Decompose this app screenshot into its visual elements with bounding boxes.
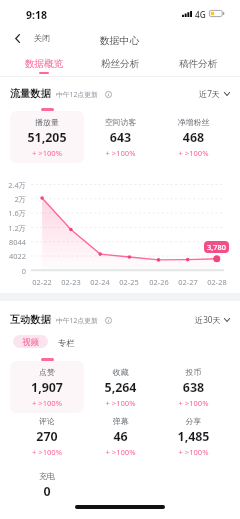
staticText: + >100% bbox=[10, 148, 84, 158]
button[interactable]: 数据概览 bbox=[12, 52, 76, 76]
button[interactable]: 专栏 bbox=[54, 334, 79, 348]
staticText: 互动数据 bbox=[10, 313, 51, 326]
staticText: 数据概览 bbox=[25, 58, 64, 70]
staticText: 468 bbox=[157, 129, 230, 146]
staticText: 0 bbox=[0, 266, 26, 276]
staticText: 4G bbox=[195, 9, 206, 20]
button[interactable] bbox=[10, 410, 84, 462]
staticText: 1.2万 bbox=[0, 223, 26, 233]
staticText: 02-22 bbox=[28, 277, 56, 287]
other: Info bbox=[105, 317, 112, 324]
staticText: 8044 bbox=[0, 237, 26, 247]
staticText: 02-24 bbox=[86, 277, 114, 287]
other: Info bbox=[105, 91, 112, 98]
staticText: 1,485 bbox=[157, 428, 230, 445]
button[interactable]: 近30天 bbox=[191, 313, 240, 326]
staticText: 2万 bbox=[0, 194, 26, 204]
staticText: 270 bbox=[10, 428, 84, 445]
staticText: 视频 bbox=[22, 337, 39, 348]
button[interactable]: Back bbox=[9, 29, 57, 47]
staticText: + >100% bbox=[84, 398, 157, 408]
staticText: 1.6万 bbox=[0, 208, 26, 218]
staticText: 净增粉丝 bbox=[157, 117, 230, 127]
staticText: 51,205 bbox=[10, 129, 84, 146]
staticText: 02-23 bbox=[57, 277, 85, 287]
button[interactable] bbox=[157, 111, 230, 163]
button[interactable]: 粉丝分析 bbox=[88, 52, 152, 76]
staticText: 2.4万 bbox=[0, 180, 26, 190]
button[interactable]: 稿件分析 bbox=[166, 52, 230, 76]
staticText: 1,907 bbox=[10, 379, 84, 396]
staticText: + >100% bbox=[10, 447, 84, 457]
staticText: 点赞 bbox=[10, 367, 84, 377]
staticText: 评论 bbox=[10, 416, 84, 426]
staticText: 5,264 bbox=[84, 379, 157, 396]
button[interactable] bbox=[10, 465, 84, 517]
staticText: + >100% bbox=[10, 398, 84, 408]
button[interactable] bbox=[10, 361, 84, 413]
staticText: 关闭 bbox=[34, 33, 51, 43]
staticText: 投币 bbox=[157, 367, 230, 377]
button[interactable] bbox=[157, 361, 230, 413]
staticText: + >100% bbox=[84, 447, 157, 457]
staticText: 02-27 bbox=[174, 277, 202, 287]
staticText: 播放量 bbox=[10, 117, 84, 127]
button[interactable] bbox=[84, 111, 157, 163]
button[interactable]: 近7天 bbox=[195, 87, 240, 100]
other: Back bbox=[15, 34, 20, 43]
staticText: 数据中心 bbox=[100, 35, 140, 47]
staticText: 02-26 bbox=[145, 277, 173, 287]
staticText: 0 bbox=[10, 483, 84, 500]
button[interactable]: 视频 bbox=[13, 335, 48, 348]
staticText: 弹幕 bbox=[84, 416, 157, 426]
button[interactable] bbox=[10, 111, 84, 163]
staticText: 近30天 bbox=[195, 314, 221, 325]
staticText: 专栏 bbox=[58, 338, 75, 348]
staticText: + >100% bbox=[84, 148, 157, 158]
staticText: 充电 bbox=[10, 471, 84, 481]
button[interactable] bbox=[84, 410, 157, 462]
staticText: 9:18 bbox=[26, 8, 47, 22]
staticText: + >100% bbox=[157, 148, 230, 158]
staticText: 643 bbox=[84, 129, 157, 146]
staticText: + >100% bbox=[157, 447, 230, 457]
staticText: 3,780 bbox=[207, 242, 226, 252]
button[interactable] bbox=[84, 361, 157, 413]
staticText: 收藏 bbox=[84, 367, 157, 377]
staticText: 4022 bbox=[0, 251, 26, 261]
staticText: 638 bbox=[157, 379, 230, 396]
staticText: 分享 bbox=[157, 416, 230, 426]
staticText: 近7天 bbox=[199, 88, 221, 99]
staticText: 02-28 bbox=[203, 277, 231, 287]
staticText: + >100% bbox=[157, 398, 230, 408]
staticText: 流量数据 bbox=[10, 87, 51, 100]
staticText: 中午12点更新 bbox=[56, 90, 98, 99]
staticText: 稿件分析 bbox=[179, 58, 218, 70]
staticText: 空间访客 bbox=[84, 117, 157, 127]
button[interactable] bbox=[157, 410, 230, 462]
staticText: 02-25 bbox=[115, 277, 143, 287]
staticText: 粉丝分析 bbox=[101, 58, 140, 70]
staticText: 46 bbox=[84, 428, 157, 445]
staticText: 中午12点更新 bbox=[56, 316, 98, 325]
